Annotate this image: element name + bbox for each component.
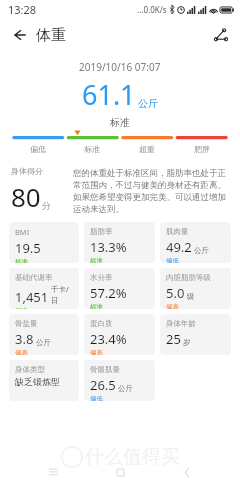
staticText: 标准: [90, 303, 103, 309]
staticText: 偏高: [90, 349, 103, 355]
staticText: 5.0: [166, 284, 185, 302]
staticText: 内脏脂肪等级: [166, 273, 211, 282]
staticText: 2019/10/16 07:07: [79, 60, 161, 74]
button[interactable]: 脂肪率: [84, 222, 155, 263]
staticText: BMI: [15, 227, 30, 237]
button[interactable]: Back: [6, 22, 32, 48]
staticText: 分: [42, 200, 51, 211]
button[interactable]: 肌肉量: [160, 222, 231, 263]
staticText: 25: [166, 330, 181, 348]
staticText: 标准: [15, 307, 28, 309]
button[interactable]: Recents: [39, 464, 67, 480]
staticText: 偏高: [15, 349, 28, 355]
staticText: 57.2%: [90, 284, 127, 302]
staticText: 水分率: [90, 273, 113, 282]
staticText: 身体类型: [15, 365, 45, 374]
staticText: 偏低: [166, 257, 179, 263]
staticText: 肥胖: [194, 144, 210, 154]
staticText: 什么值得买: [85, 445, 180, 469]
staticText: 超重: [139, 144, 155, 154]
button[interactable]: 水分率: [84, 268, 155, 309]
staticText: 13.3%: [90, 238, 127, 256]
staticText: 19.5: [15, 239, 41, 257]
button[interactable]: 身体类型: [9, 360, 79, 401]
staticText: 您的体重处于标准区间，脂肪率也处于正常范围内，不过与健美的身材还有距离。如果您希…: [73, 168, 229, 214]
button[interactable]: 基础代谢率: [9, 268, 79, 309]
button[interactable]: 骨骼肌量: [84, 360, 155, 401]
staticText: 偏低: [90, 395, 103, 401]
staticText: 身体年龄: [166, 319, 196, 328]
button[interactable]: 蛋白质: [84, 314, 155, 355]
staticText: 偏低: [30, 144, 46, 154]
staticText: 80: [11, 179, 41, 214]
staticText: 基础代谢率: [15, 273, 53, 282]
staticText: 蛋白质: [90, 319, 113, 328]
staticText: 49.2: [166, 238, 192, 256]
staticText: 3.8: [15, 330, 34, 348]
staticText: 脂肪率: [90, 227, 113, 236]
staticText: 公斤: [36, 338, 51, 347]
staticText: 骨骼肌量: [90, 365, 120, 374]
staticText: 体重: [36, 26, 66, 45]
staticText: 标准: [84, 144, 100, 154]
button[interactable]: 骨盐量: [9, 314, 79, 355]
staticText: 公斤: [118, 384, 133, 393]
staticText: 标准: [110, 116, 130, 129]
staticText: 公斤: [138, 97, 158, 110]
staticText: 岁: [183, 338, 191, 347]
staticText: 缺乏锻炼型: [15, 376, 60, 387]
button[interactable]: BMI: [9, 222, 79, 263]
staticText: 1,451: [15, 288, 49, 306]
button[interactable]: Share: [208, 22, 234, 48]
staticText: 公斤: [194, 246, 209, 255]
staticText: 骨盐量: [15, 319, 38, 328]
staticText: 千卡/日: [51, 284, 76, 305]
staticText: 标准: [15, 258, 28, 263]
staticText: 13:28: [8, 2, 37, 17]
staticText: 61.1: [82, 76, 136, 113]
staticText: ...0.0K/s: [137, 4, 167, 15]
staticText: 23.4%: [90, 330, 127, 348]
staticText: 肌肉量: [166, 227, 189, 236]
staticText: 身体得分: [11, 166, 43, 176]
button[interactable]: 内脏脂肪等级: [160, 268, 231, 309]
staticText: 级: [187, 292, 195, 301]
staticText: 26.5: [90, 376, 116, 394]
staticText: 偏高: [166, 303, 179, 309]
staticText: 标准: [90, 257, 103, 263]
button[interactable]: 身体年龄: [160, 314, 231, 355]
button[interactable]: Back: [173, 464, 201, 480]
button[interactable]: Home: [106, 464, 134, 480]
